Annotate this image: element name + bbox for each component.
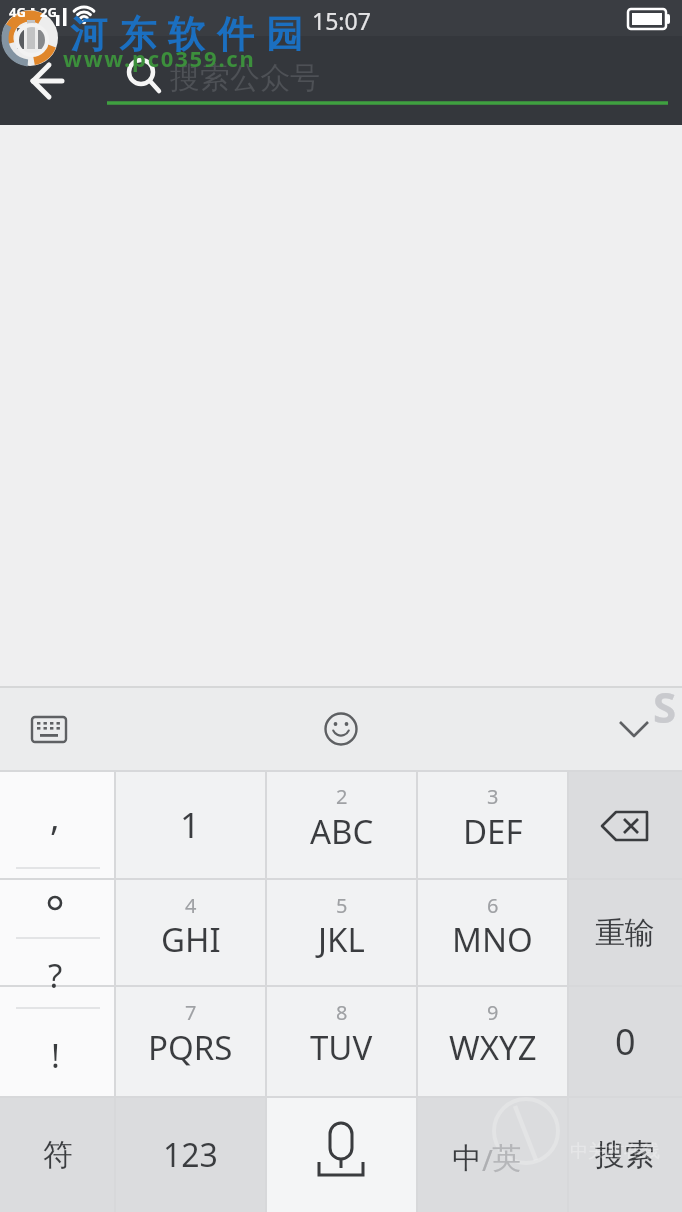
staticText: , (50, 792, 60, 841)
button[interactable] (568, 986, 682, 1097)
button[interactable] (417, 986, 568, 1097)
staticText: GHI (161, 917, 221, 962)
staticText: JKL (318, 917, 365, 962)
staticText: WXYZ (449, 1025, 537, 1070)
staticText: 0 (615, 1017, 636, 1066)
staticText: www.pc0359.cn (63, 43, 256, 73)
staticText: 7 (185, 999, 197, 1026)
staticText: 1 (180, 801, 201, 849)
button[interactable] (266, 771, 417, 879)
staticText: ? (48, 953, 63, 998)
button[interactable] (115, 1097, 266, 1212)
staticText: 2G (40, 3, 57, 21)
staticText: 15:07 (312, 5, 371, 33)
staticText: DEF (463, 809, 523, 854)
staticText: 搜索 (595, 1136, 655, 1174)
button[interactable] (266, 879, 417, 986)
button[interactable] (115, 986, 266, 1097)
staticText: 6 (487, 892, 499, 919)
staticText: TUV (310, 1025, 373, 1070)
button[interactable] (0, 771, 115, 1097)
staticText: 河东软件园 (64, 11, 309, 58)
staticText: 中关村在线 (570, 1140, 660, 1163)
staticText: 5 (336, 892, 348, 919)
staticText: MNO (452, 917, 533, 962)
staticText: / (482, 1140, 493, 1179)
button[interactable] (266, 986, 417, 1097)
button[interactable] (568, 1097, 682, 1212)
staticText: PQRS (148, 1025, 233, 1070)
staticText: 搜索公众号 (170, 59, 320, 97)
staticText: 8 (336, 999, 348, 1026)
staticText: 9 (487, 999, 499, 1026)
staticText: 4 (185, 892, 197, 919)
staticText: ! (51, 1033, 60, 1078)
button[interactable] (115, 771, 266, 879)
staticText: 123 (163, 1133, 218, 1177)
staticText: 3 (487, 783, 499, 810)
staticText: 中 (452, 1140, 481, 1177)
button[interactable] (266, 1097, 417, 1212)
staticText: 符 (43, 1136, 73, 1174)
button[interactable] (417, 879, 568, 986)
button[interactable] (115, 879, 266, 986)
button[interactable] (0, 1097, 115, 1212)
button[interactable] (568, 879, 682, 986)
staticText: 英 (492, 1140, 521, 1177)
button[interactable] (417, 771, 568, 879)
staticText: 重输 (595, 914, 655, 952)
staticText: S (653, 678, 677, 735)
button[interactable] (568, 771, 682, 879)
button[interactable] (417, 1097, 568, 1212)
staticText: 2 (336, 783, 348, 810)
staticText: 4G (9, 3, 26, 21)
staticText: ABC (310, 809, 374, 854)
